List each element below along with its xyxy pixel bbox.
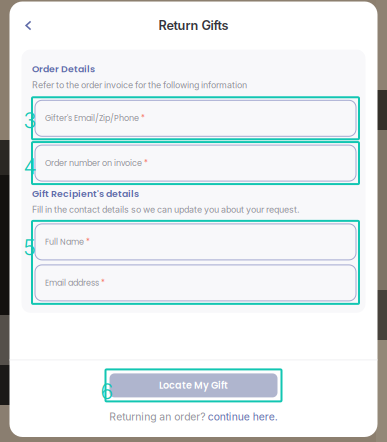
staticText: Returning an order?: [109, 410, 205, 423]
staticText: Refer to the order invoice for the follo…: [32, 80, 247, 90]
staticText: Return Gifts: [158, 18, 228, 33]
staticText: continue here.: [208, 410, 278, 423]
button[interactable]: continue here.: [208, 410, 278, 423]
staticText: Full Name: [45, 236, 84, 247]
staticText: 4: [23, 153, 36, 179]
staticText: *: [84, 236, 90, 247]
button[interactable]: Back: [15, 12, 41, 38]
staticText: 6: [100, 378, 113, 404]
staticText: Gifter's Email/Zip/Phone: [45, 113, 139, 124]
staticText: Email address: [45, 277, 99, 288]
staticText: Gift Recipient's details: [32, 187, 139, 200]
staticText: *: [139, 113, 145, 124]
staticText: Fill in the contact details so we can up…: [32, 204, 300, 215]
button[interactable]: Locate My Gift: [109, 373, 277, 397]
staticText: 5: [23, 234, 35, 260]
staticText: Locate My Gift: [159, 379, 228, 392]
staticText: *: [142, 157, 148, 169]
staticText: Order Details: [32, 62, 95, 76]
staticText: *: [99, 277, 105, 288]
staticText: Order number on invoice: [45, 157, 142, 169]
staticText: 3: [23, 107, 36, 133]
